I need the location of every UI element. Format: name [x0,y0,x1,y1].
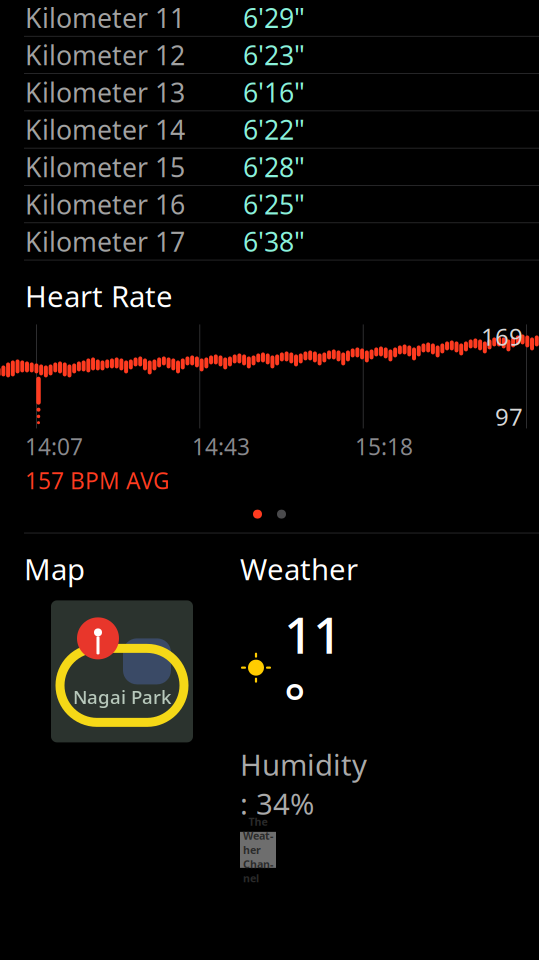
staticText: 6'22" [243,112,305,147]
staticText: Kilometer 14 [25,112,185,147]
staticText: Kilometer 17 [25,224,185,259]
staticText: Channel [243,857,273,885]
staticText: 6'38" [243,224,305,259]
staticText: 6'28" [243,149,305,184]
staticText: Map [24,549,85,588]
staticText: 14:07 [25,431,83,461]
staticText: Humidity: 34% [240,745,367,823]
staticText: 6'16" [243,74,305,110]
staticText: Heart Rate [25,276,173,315]
staticText: 14:43 [192,431,250,461]
staticText: 97 [495,401,523,432]
staticText: Kilometer 13 [25,74,185,110]
staticText: 6'25" [243,186,305,222]
staticText: The [248,814,267,829]
staticText: Weather [243,829,273,857]
staticText: 15:18 [355,431,413,461]
staticText: Nagai Park [73,684,171,709]
staticText: 169 [481,320,523,352]
staticText: 157 BPM AVG [25,465,170,496]
staticText: Kilometer 16 [25,186,185,222]
staticText: 6'23" [243,37,305,73]
staticText: Kilometer 12 [25,37,185,73]
staticText: Kilometer 15 [25,149,185,184]
button[interactable]: Map of workout route, Nagai Park [51,588,193,742]
staticText: 6'29" [243,0,305,35]
staticText: 11° [284,600,342,735]
staticText: Weather [240,549,358,588]
staticText: Kilometer 11 [25,0,185,35]
